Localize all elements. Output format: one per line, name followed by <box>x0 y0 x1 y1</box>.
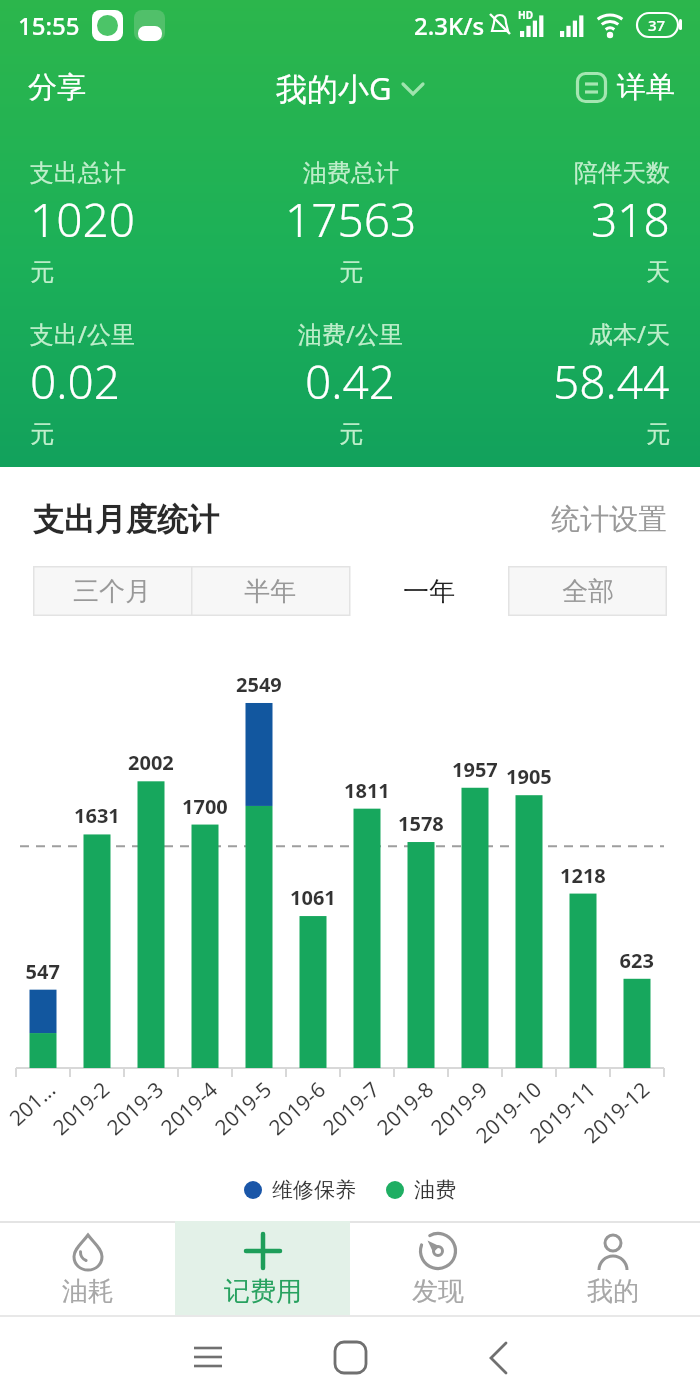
button[interactable]: 全部 <box>508 566 667 616</box>
staticText: 元 <box>339 419 363 449</box>
staticText: 陪伴天数 <box>574 158 670 188</box>
staticText: 统计设置 <box>551 501 667 538</box>
staticText: 0.02 <box>30 350 121 413</box>
staticText: 半年 <box>244 575 296 608</box>
button[interactable]: 我的 <box>525 1221 700 1315</box>
staticText: 三个月 <box>73 575 151 608</box>
staticText: 天 <box>646 257 670 287</box>
staticText: 油费/公里 <box>298 317 403 350</box>
staticText: 支出月度统计 <box>33 500 219 539</box>
button[interactable]: 发现 <box>350 1221 525 1315</box>
staticText: 元 <box>646 419 670 449</box>
staticText: 支出总计 <box>30 158 126 188</box>
staticText: 我的小G <box>276 67 392 109</box>
staticText: 发现 <box>412 1275 464 1308</box>
staticText: 318 <box>591 188 670 251</box>
staticText: 15:55 <box>18 9 80 42</box>
button[interactable]: 详单 <box>576 69 675 106</box>
button[interactable]: 三个月 <box>33 566 191 616</box>
staticText: 1020 <box>30 188 136 251</box>
staticText: 维修保养 <box>272 1177 356 1203</box>
button[interactable]: 我的小G <box>276 67 425 109</box>
staticText: 17563 <box>285 188 417 251</box>
staticText: 元 <box>30 419 54 449</box>
staticText: 全部 <box>562 575 614 608</box>
button[interactable]: 一年 <box>349 566 508 616</box>
staticText: 58.44 <box>553 350 670 413</box>
staticText: 成本/天 <box>589 317 670 350</box>
staticText: 油耗 <box>62 1275 114 1308</box>
staticText: 0.42 <box>305 350 396 413</box>
button[interactable]: 分享 <box>28 69 86 106</box>
staticText: 元 <box>30 257 54 287</box>
staticText: 元 <box>339 257 363 287</box>
staticText: 详单 <box>617 69 675 106</box>
staticText: 我的 <box>587 1275 639 1308</box>
staticText: 记费用 <box>224 1275 302 1308</box>
staticText: 支出/公里 <box>30 317 135 350</box>
button[interactable]: 油耗 <box>0 1221 175 1315</box>
staticText: 一年 <box>403 575 455 608</box>
button[interactable]: 统计设置 <box>551 501 667 538</box>
button[interactable]: 记费用 <box>175 1221 350 1315</box>
staticText: 油费总计 <box>303 158 399 188</box>
button[interactable]: 半年 <box>191 566 349 616</box>
staticText: 油费 <box>414 1177 456 1203</box>
staticText: 分享 <box>28 69 86 106</box>
